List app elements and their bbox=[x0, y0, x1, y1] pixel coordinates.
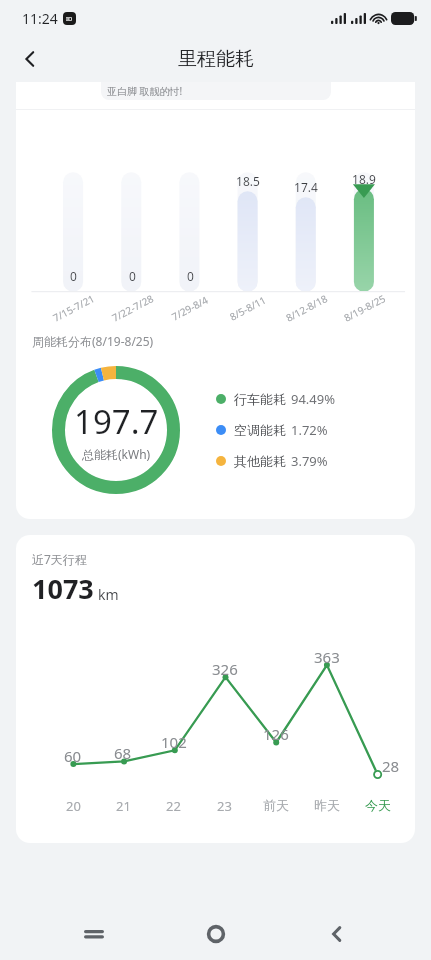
staticText: 18.5 bbox=[236, 173, 260, 189]
button[interactable]: Back bbox=[309, 908, 365, 960]
staticText: 8/12-8/18 bbox=[283, 291, 330, 325]
staticText: 8/19-8/25 bbox=[341, 291, 388, 325]
staticText: 0 bbox=[70, 268, 77, 284]
staticText: 周能耗分布(8/19-8/25) bbox=[32, 333, 154, 349]
staticText: 102 bbox=[161, 732, 187, 752]
staticText: 里程能耗 bbox=[178, 47, 254, 71]
staticText: 23 bbox=[217, 797, 232, 815]
button[interactable]: 空调能耗 bbox=[216, 421, 328, 439]
staticText: 空调能耗 bbox=[234, 422, 286, 438]
staticText: 总能耗(kWh) bbox=[82, 446, 151, 462]
staticText: 1073 bbox=[32, 570, 94, 607]
staticText: 今天 bbox=[365, 797, 391, 813]
staticText: 前天 bbox=[263, 797, 289, 813]
staticText: 17.4 bbox=[294, 179, 318, 195]
staticText: 60 bbox=[64, 746, 82, 766]
staticText: 1.72% bbox=[291, 421, 328, 439]
staticText: 0 bbox=[129, 268, 136, 284]
button[interactable]: Back bbox=[10, 39, 50, 79]
staticText: 326 bbox=[212, 659, 238, 679]
button[interactable]: Recent apps bbox=[66, 908, 122, 960]
staticText: 近7天行程 bbox=[32, 551, 87, 567]
button[interactable]: Home bbox=[188, 908, 244, 960]
staticText: 22 bbox=[166, 797, 181, 815]
staticText: km bbox=[98, 585, 119, 604]
staticText: 21 bbox=[116, 797, 131, 815]
staticText: 昨天 bbox=[314, 797, 340, 813]
staticText: 197.7 bbox=[74, 399, 159, 444]
staticText: 8/5-8/11 bbox=[227, 292, 269, 323]
staticText: 11:24 bbox=[22, 9, 58, 28]
staticText: 7/29-8/4 bbox=[169, 292, 211, 323]
staticText: 363 bbox=[314, 647, 340, 667]
staticText: 68 bbox=[114, 743, 132, 763]
button[interactable]: 行车能耗 bbox=[216, 390, 336, 408]
staticText: 0 bbox=[187, 268, 194, 284]
button[interactable]: 其他能耗 bbox=[216, 452, 328, 470]
staticText: 20 bbox=[66, 797, 81, 815]
staticText: 126 bbox=[263, 724, 289, 744]
staticText: 94.49% bbox=[291, 390, 336, 408]
staticText: 28 bbox=[382, 756, 400, 776]
staticText: ID bbox=[66, 15, 73, 23]
staticText: 3.79% bbox=[291, 452, 328, 470]
staticText: 行车能耗 bbox=[234, 391, 286, 407]
staticText: 7/22-7/28 bbox=[109, 291, 156, 325]
staticText: 18.9 bbox=[352, 171, 376, 187]
staticText: 亚白脚 取靓的忖! bbox=[107, 84, 331, 98]
staticText: 其他能耗 bbox=[234, 453, 286, 469]
staticText: 7/15-7/21 bbox=[50, 291, 97, 325]
